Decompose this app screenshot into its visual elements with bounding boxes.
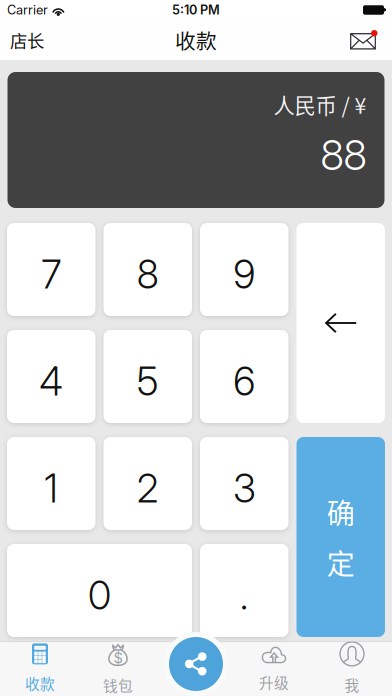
- staticText: $: [113, 649, 122, 667]
- staticText: 8: [137, 251, 159, 298]
- button[interactable]: 2: [103, 437, 192, 530]
- button[interactable]: 6: [200, 330, 288, 423]
- staticText: 7: [41, 251, 61, 298]
- staticText: 5:10 PM: [172, 2, 220, 18]
- staticText: 88: [320, 130, 366, 180]
- button[interactable]: $: [79, 641, 157, 696]
- button[interactable]: 店长: [4, 20, 50, 59]
- button[interactable]: 0: [7, 544, 192, 637]
- button[interactable]: 收款: [1, 641, 79, 696]
- staticText: 3: [233, 465, 255, 512]
- button[interactable]: Messages: [340, 20, 388, 59]
- staticText: 2: [137, 465, 159, 512]
- staticText: 9: [233, 251, 255, 298]
- staticText: 定: [327, 542, 355, 582]
- staticText: 4: [39, 358, 63, 405]
- staticText: 我: [344, 674, 359, 695]
- staticText: .: [240, 572, 249, 619]
- staticText: 钱包: [103, 674, 133, 696]
- staticText: 收款: [25, 672, 55, 694]
- staticText: 6: [233, 358, 255, 405]
- button[interactable]: 确: [296, 437, 385, 637]
- button[interactable]: 1: [7, 437, 95, 530]
- staticText: 5: [137, 358, 159, 405]
- staticText: 店长: [10, 27, 44, 53]
- staticText: Carrier: [7, 2, 48, 18]
- button[interactable]: 3: [200, 437, 288, 530]
- button[interactable]: 我: [313, 641, 391, 696]
- staticText: 人民币 / ¥: [273, 89, 366, 120]
- button[interactable]: 4: [7, 330, 95, 423]
- staticText: 升级: [259, 671, 289, 693]
- button[interactable]: 8: [103, 223, 192, 316]
- button[interactable]: 5: [103, 330, 192, 423]
- staticText: 收款: [175, 25, 217, 55]
- button[interactable]: Share: [164, 632, 228, 696]
- staticText: 0: [88, 572, 111, 619]
- button[interactable]: 7: [7, 223, 95, 316]
- button[interactable]: 9: [200, 223, 288, 316]
- button[interactable]: 升级: [235, 641, 313, 696]
- button[interactable]: .: [200, 544, 288, 637]
- staticText: 1: [44, 465, 58, 512]
- staticText: 确: [327, 491, 355, 532]
- button[interactable]: Delete: [296, 223, 385, 423]
